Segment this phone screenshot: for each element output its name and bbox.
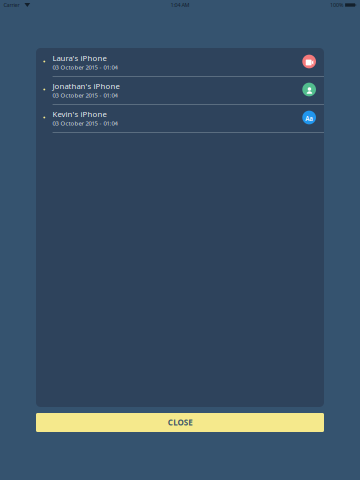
- staticText: Carrier: [3, 1, 19, 9]
- staticText: Aa: [305, 114, 313, 123]
- staticText: 1:04 AM: [170, 1, 189, 9]
- staticText: 03 October 2015 - 01:04: [53, 119, 118, 127]
- staticText: 03 October 2015 - 01:04: [53, 91, 118, 99]
- staticText: Kevin's iPhone: [53, 109, 107, 119]
- button[interactable]: Kevin's iPhone: [36, 104, 324, 132]
- staticText: Laura's iPhone: [53, 53, 107, 63]
- button[interactable]: CLOSE: [36, 413, 324, 432]
- staticText: 03 October 2015 - 01:04: [53, 63, 118, 71]
- button[interactable]: Laura's iPhone: [36, 48, 324, 76]
- staticText: Jonathan's iPhone: [53, 81, 120, 91]
- staticText: CLOSE: [168, 417, 192, 428]
- staticText: 100%: [330, 1, 343, 9]
- button[interactable]: Jonathan's iPhone: [36, 76, 324, 104]
